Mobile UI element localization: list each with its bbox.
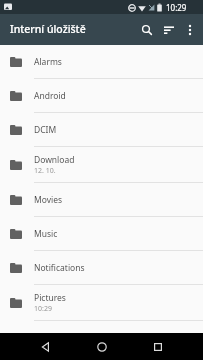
button[interactable]: Movies <box>0 183 203 217</box>
button[interactable] <box>32 333 59 360</box>
staticText: 10:29 <box>34 304 52 314</box>
staticText: 12. 10. <box>34 166 56 176</box>
button[interactable] <box>136 19 158 41</box>
button[interactable] <box>144 333 171 360</box>
button[interactable]: Pictures <box>0 285 203 321</box>
button[interactable]: Alarms <box>0 45 203 79</box>
button[interactable]: DCIM <box>0 113 203 147</box>
staticText: DCIM <box>34 124 57 136</box>
staticText: Pictures <box>34 292 66 304</box>
staticText: Music <box>34 228 58 240</box>
staticText: Android <box>34 90 66 102</box>
button[interactable]: Music <box>0 217 203 251</box>
button[interactable]: Android <box>0 79 203 113</box>
staticText: 10:29 <box>166 2 187 13</box>
staticText: Alarms <box>34 56 62 68</box>
button[interactable]: Notifications <box>0 251 203 285</box>
button[interactable] <box>88 333 115 360</box>
staticText: Interní úložiště <box>10 22 86 36</box>
staticText: Movies <box>34 194 63 206</box>
button[interactable]: Download <box>0 147 203 183</box>
button[interactable] <box>180 20 200 40</box>
staticText: Notifications <box>34 262 85 274</box>
button[interactable] <box>158 19 180 41</box>
staticText: Download <box>34 154 75 166</box>
